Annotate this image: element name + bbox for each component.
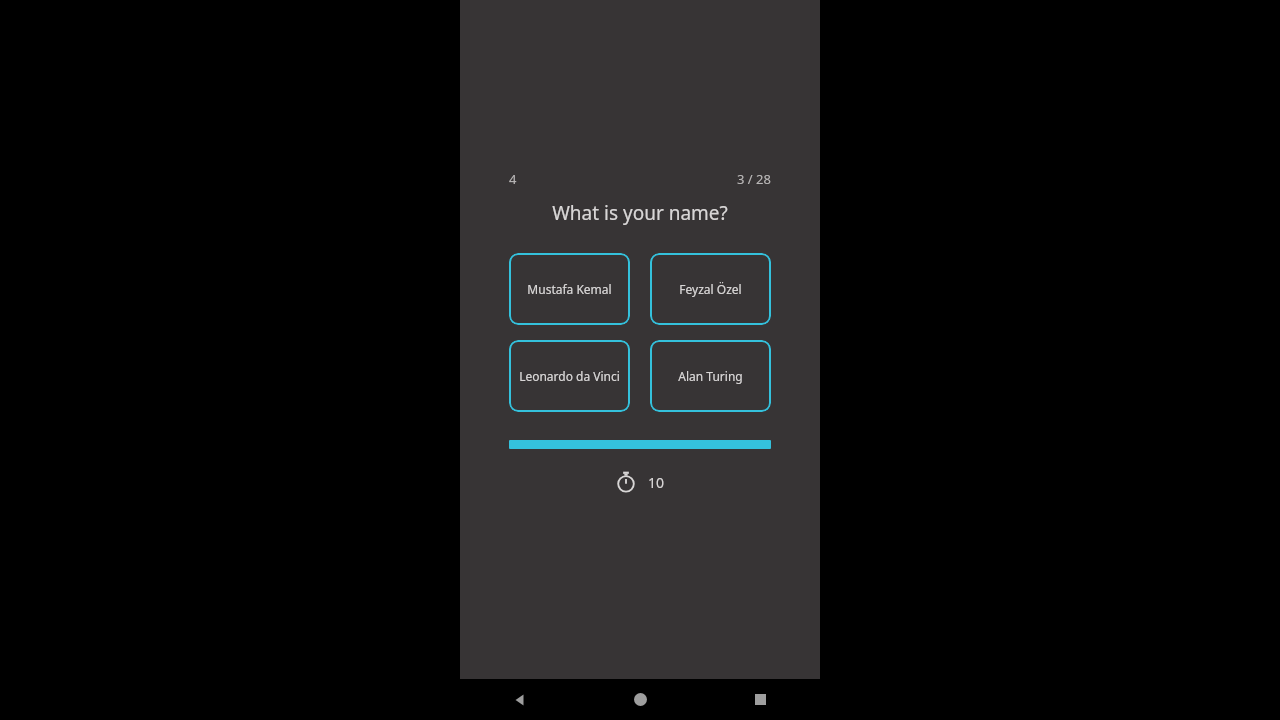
button[interactable]: Back [460,679,580,720]
button[interactable]: Feyzal Özel [650,253,771,325]
staticText: Alan Turing [678,368,743,384]
staticText: Feyzal Özel [679,281,742,297]
staticText: Mustafa Kemal [527,281,612,297]
staticText: What is your name? [552,200,728,226]
button[interactable]: Leonardo da Vinci [509,340,630,412]
button[interactable]: Alan Turing [650,340,771,412]
staticText: 10 [648,473,665,492]
staticText: 4 [509,170,517,188]
staticText: 3 / 28 [737,170,771,188]
button[interactable]: Recent apps [700,679,820,720]
staticText: Leonardo da Vinci [519,368,620,384]
other: Timer [615,471,637,493]
button[interactable]: Home [580,679,700,720]
button[interactable]: Mustafa Kemal [509,253,630,325]
